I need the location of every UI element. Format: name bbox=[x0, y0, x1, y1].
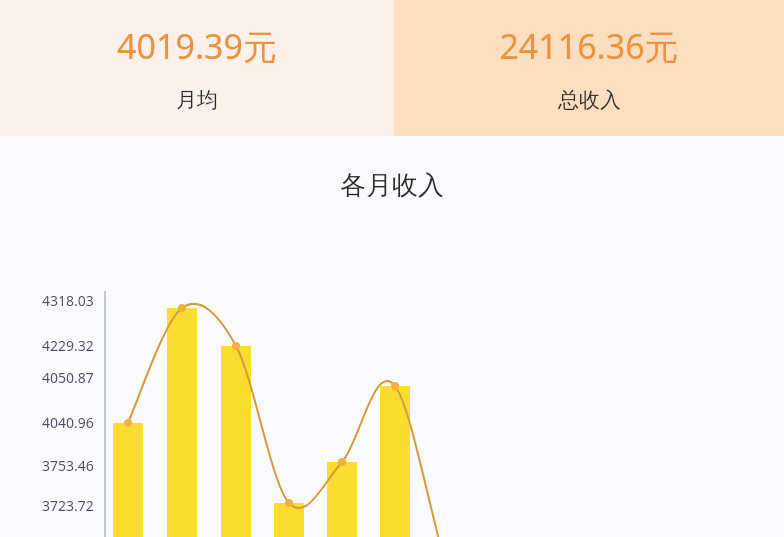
staticText: 3723.72 bbox=[42, 496, 94, 515]
button[interactable]: 4019.39元 bbox=[0, 0, 394, 136]
staticText: 4040.96 bbox=[42, 413, 94, 432]
staticText: 4050.87 bbox=[42, 368, 94, 387]
staticText: 总收入 bbox=[558, 87, 621, 113]
staticText: 4318.03 bbox=[42, 291, 94, 310]
staticText: 月均 bbox=[176, 87, 218, 113]
staticText: 4019.39元 bbox=[117, 23, 277, 69]
staticText: 4229.32 bbox=[42, 336, 94, 355]
staticText: 24116.36元 bbox=[499, 23, 679, 69]
button[interactable]: 24116.36元 bbox=[394, 0, 784, 136]
staticText: 各月收入 bbox=[0, 169, 784, 202]
staticText: 3753.46 bbox=[42, 456, 94, 475]
